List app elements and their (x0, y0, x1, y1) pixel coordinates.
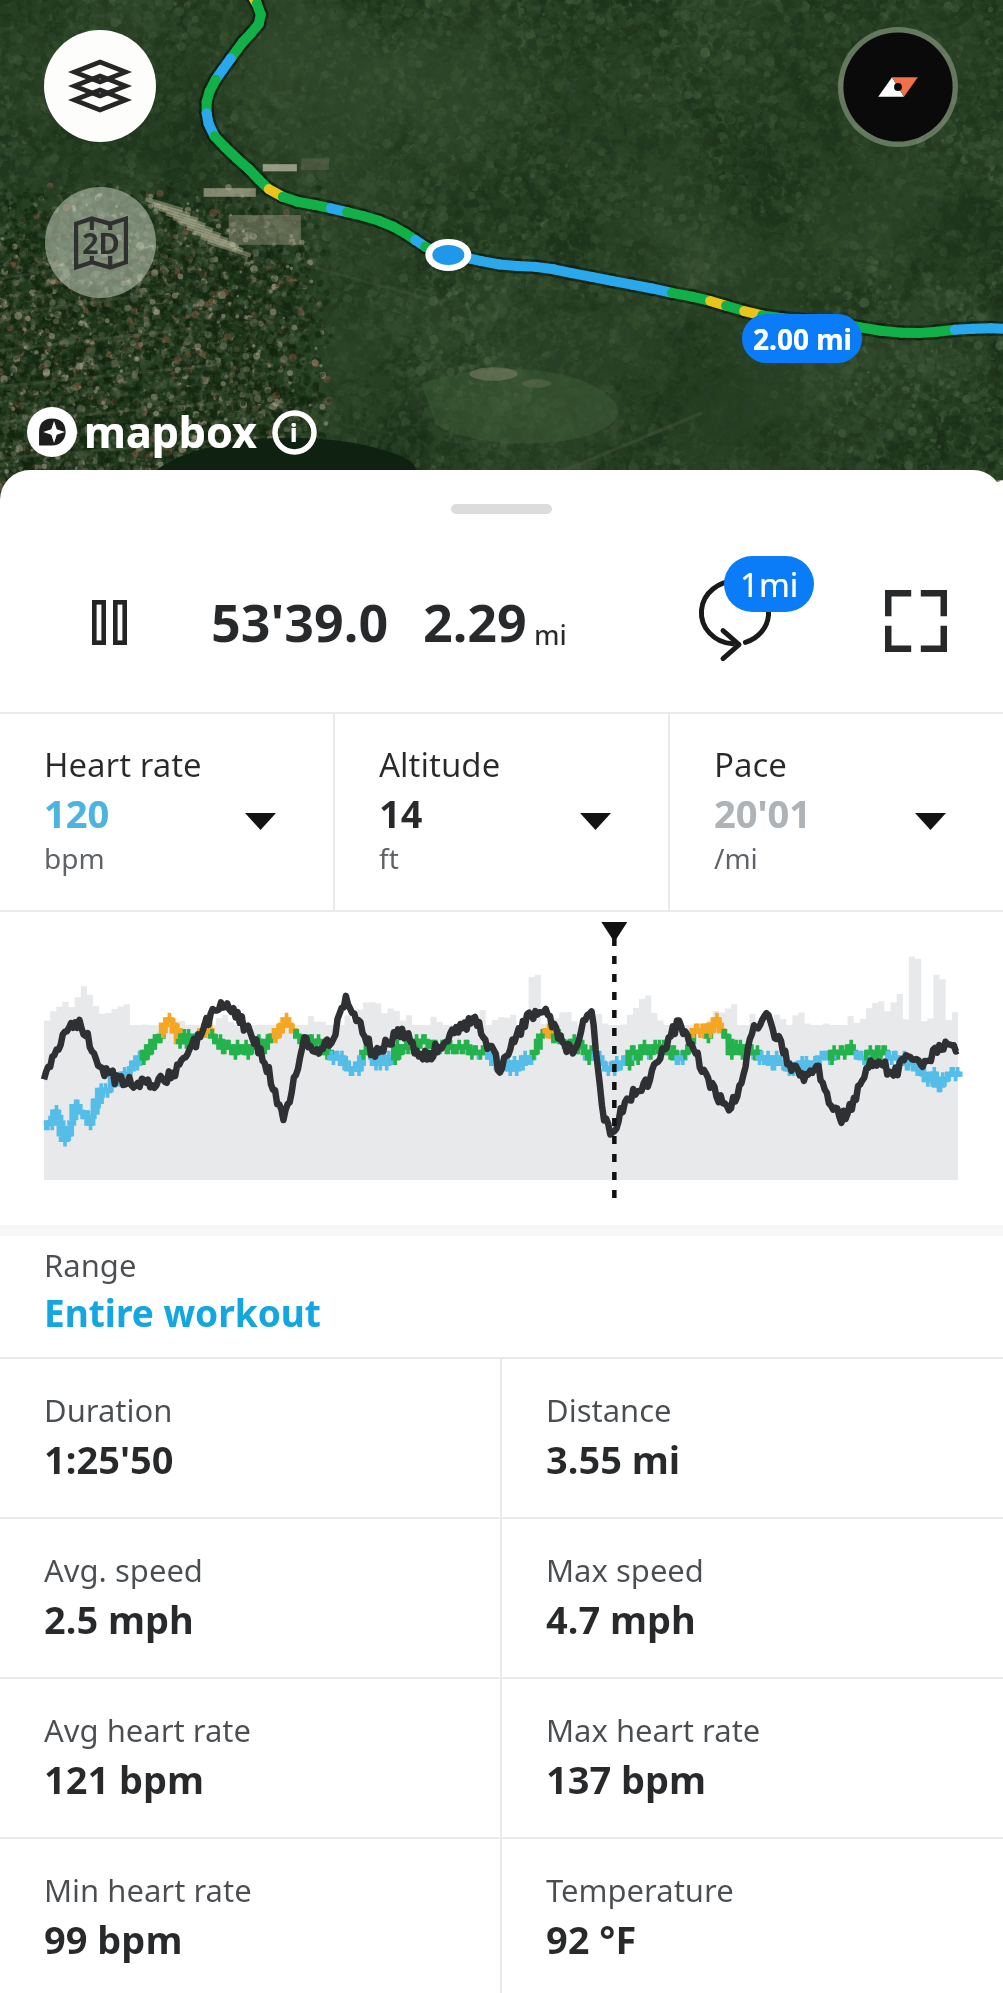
button[interactable]: Map attribution info (270, 408, 318, 456)
button[interactable]: Map layers (44, 30, 156, 142)
staticText: Temperature (546, 1869, 734, 1911)
staticText: 137 bpm (546, 1753, 707, 1805)
staticText: bpm (44, 839, 105, 877)
staticText: 99 bpm (44, 1913, 183, 1965)
button[interactable]: Altitude (335, 714, 668, 910)
staticText: Min heart rate (44, 1869, 252, 1911)
button[interactable]: Distance (502, 1359, 1003, 1517)
staticText: 2D (82, 223, 120, 262)
staticText: 121 bpm (44, 1753, 205, 1805)
button[interactable]: Min heart rate (0, 1839, 500, 1993)
button[interactable]: Max speed (502, 1519, 1003, 1677)
staticText: 1mi (740, 562, 799, 607)
button[interactable]: Avg heart rate (0, 1679, 500, 1837)
button[interactable]: Pause (66, 579, 152, 665)
staticText: 53'39.0 (211, 586, 389, 657)
button[interactable]: Max heart rate (502, 1679, 1003, 1837)
staticText: mi (534, 616, 567, 653)
staticText: Pace (714, 742, 787, 787)
staticText: 92 °F (546, 1913, 637, 1965)
staticText: /mi (714, 839, 758, 877)
staticText: Range (44, 1244, 137, 1286)
staticText: Avg. speed (44, 1549, 203, 1591)
staticText: mapbox (84, 402, 257, 461)
staticText: 20'01 (714, 787, 812, 839)
staticText: Avg heart rate (44, 1709, 252, 1751)
button[interactable]: Fullscreen (860, 565, 972, 677)
button[interactable]: Pace (670, 714, 1003, 910)
staticText: Max speed (546, 1549, 704, 1591)
staticText: Distance (546, 1389, 672, 1431)
staticText: Duration (44, 1389, 173, 1431)
button[interactable]: Toggle 2D map (45, 187, 156, 298)
staticText: 14 (379, 787, 423, 839)
button[interactable]: Compass, reset bearing (838, 27, 958, 147)
button[interactable]: Avg. speed (0, 1519, 500, 1677)
staticText: Entire workout (44, 1287, 321, 1337)
button[interactable]: Temperature (502, 1839, 1003, 1993)
staticText: 2.29 (423, 586, 527, 657)
staticText: Heart rate (44, 742, 202, 787)
button[interactable]: Range (0, 1236, 1003, 1357)
button[interactable]: Duration (0, 1359, 500, 1517)
button[interactable]: Lap interval (676, 556, 794, 674)
staticText: 3.55 mi (546, 1433, 681, 1485)
staticText: ft (379, 839, 399, 877)
staticText: 2.5 mph (44, 1593, 194, 1645)
staticText: 1:25'50 (44, 1433, 174, 1485)
staticText: 120 (44, 787, 110, 839)
staticText: Altitude (379, 742, 501, 787)
staticText: Max heart rate (546, 1709, 761, 1751)
staticText: 2.00 mi (753, 320, 852, 358)
button[interactable]: Heart rate (0, 714, 333, 910)
staticText: i (290, 415, 298, 449)
staticText: 4.7 mph (546, 1593, 696, 1645)
